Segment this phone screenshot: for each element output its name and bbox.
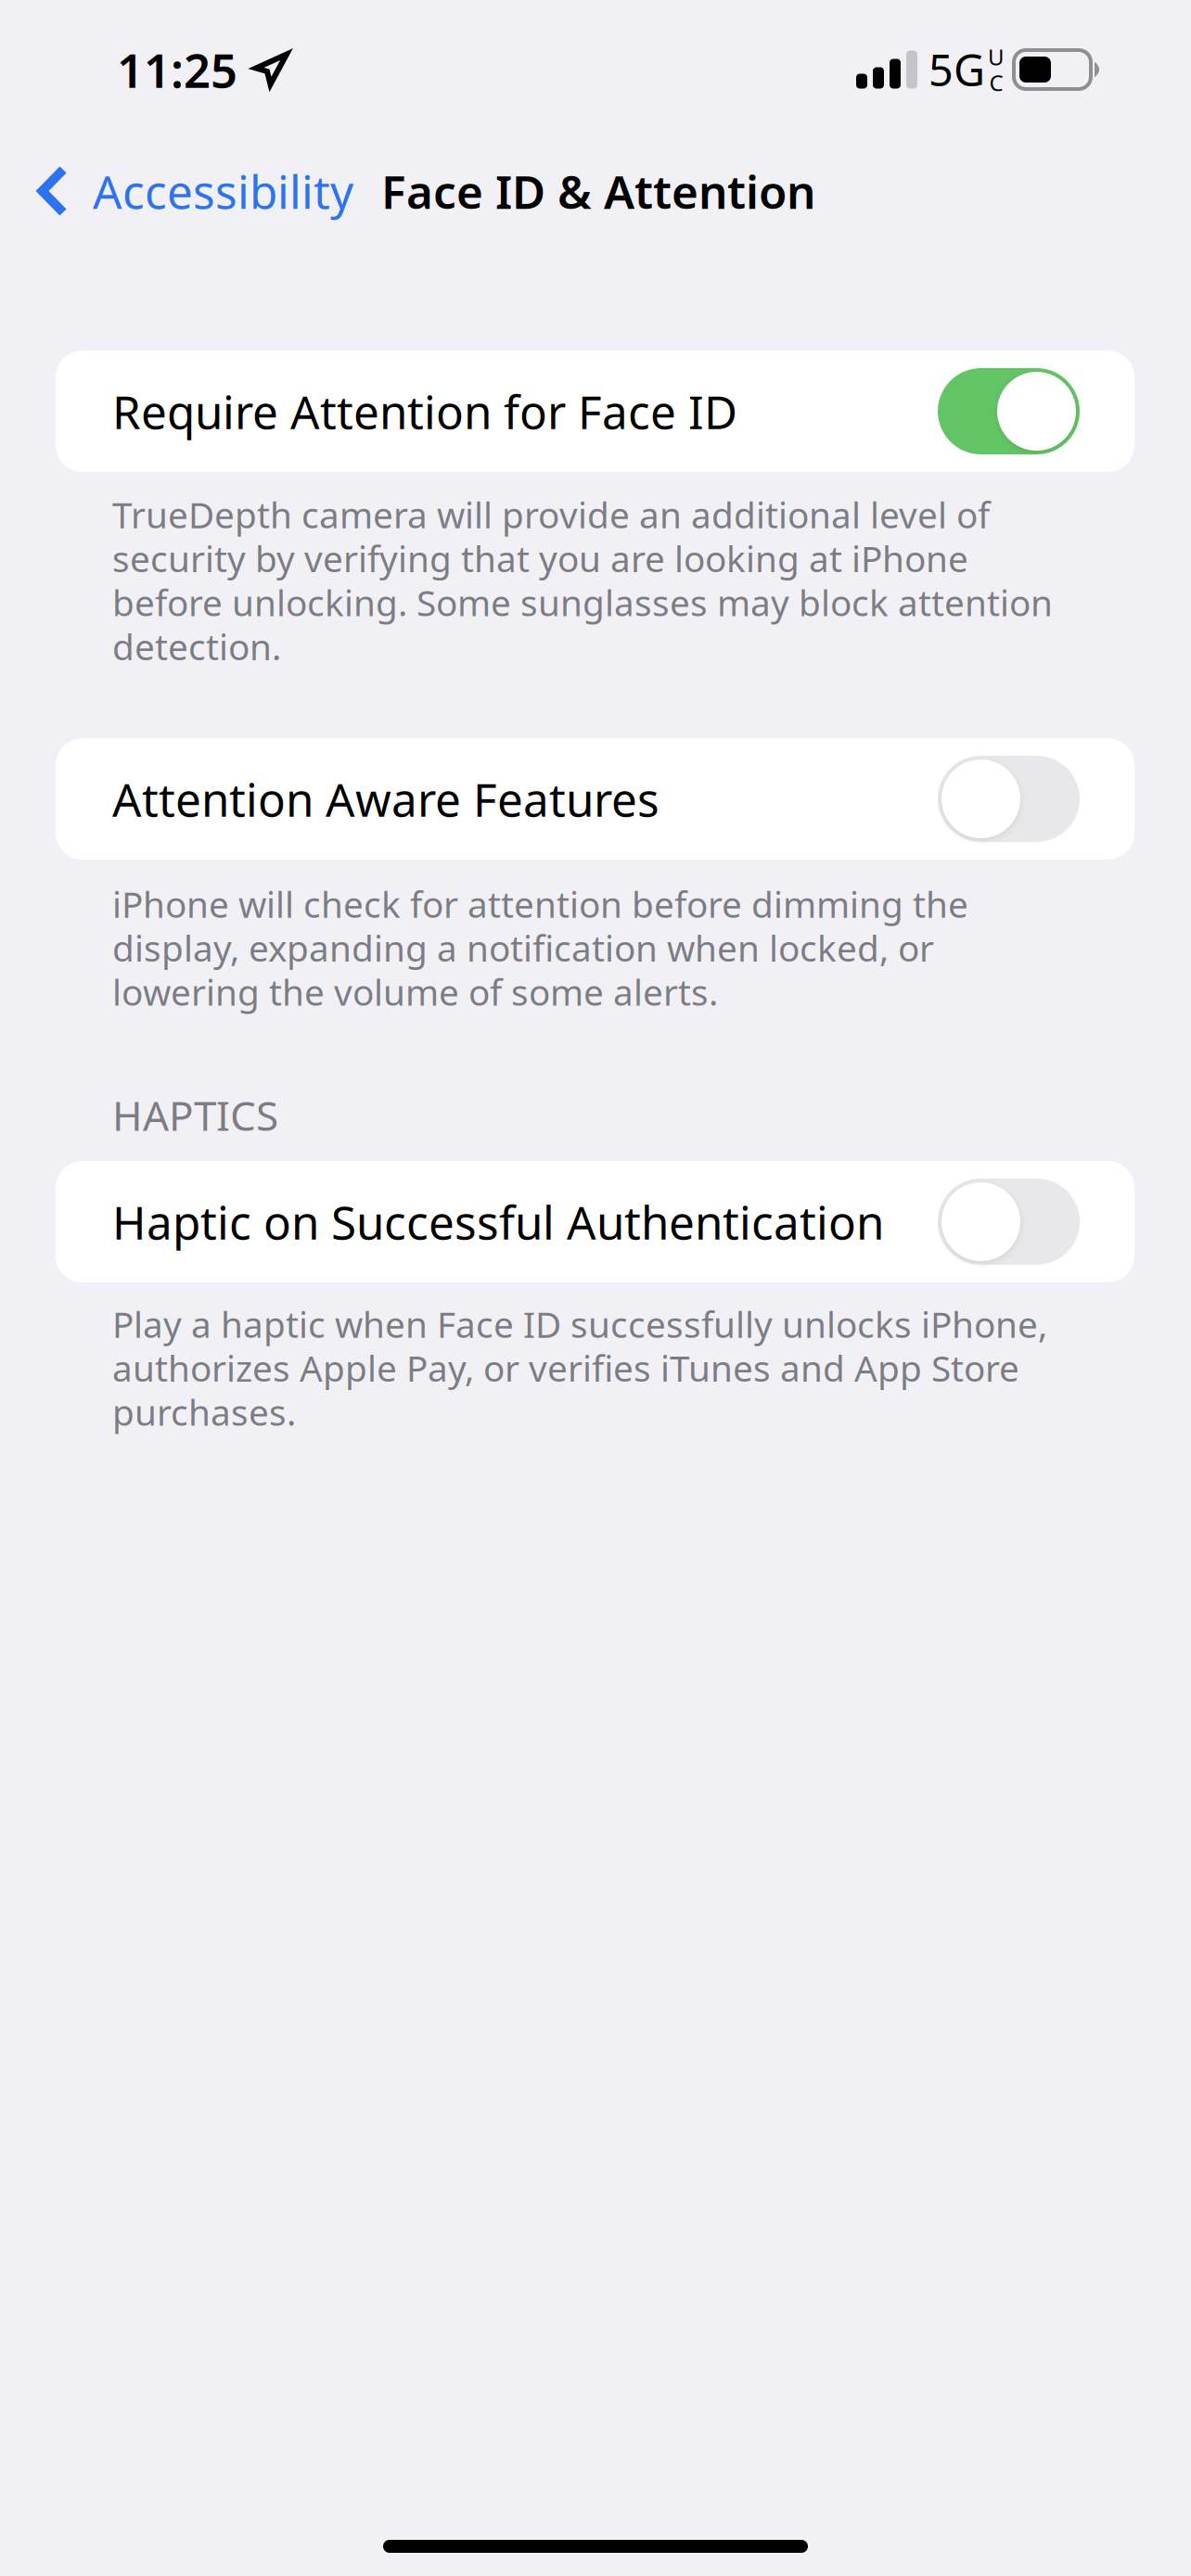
staticText: Haptic on Successful Authentication: [112, 1192, 884, 1251]
staticText: U: [988, 44, 1005, 70]
button[interactable]: Accessibility: [0, 139, 381, 243]
staticText: 5G: [928, 42, 985, 98]
staticText: Attention Aware Features: [112, 769, 660, 828]
staticText: Require Attention for Face ID: [112, 382, 737, 441]
button[interactable]: Require Attention for Face ID: [56, 351, 1134, 472]
staticText: 11:25: [117, 39, 237, 100]
staticText: HAPTICS: [112, 1089, 278, 1141]
staticText: iPhone will check for attention before d…: [112, 882, 968, 1014]
staticText: Face ID & Attention: [381, 161, 815, 221]
staticText: Play a haptic when Face ID successfully …: [112, 1302, 1047, 1434]
staticText: TrueDepth camera will provide an additio…: [112, 492, 1053, 668]
staticText: Accessibility: [93, 161, 353, 221]
button[interactable]: Haptic on Successful Authentication: [56, 1161, 1134, 1282]
button[interactable]: Attention Aware Features: [56, 738, 1134, 860]
staticText: C: [989, 70, 1003, 95]
